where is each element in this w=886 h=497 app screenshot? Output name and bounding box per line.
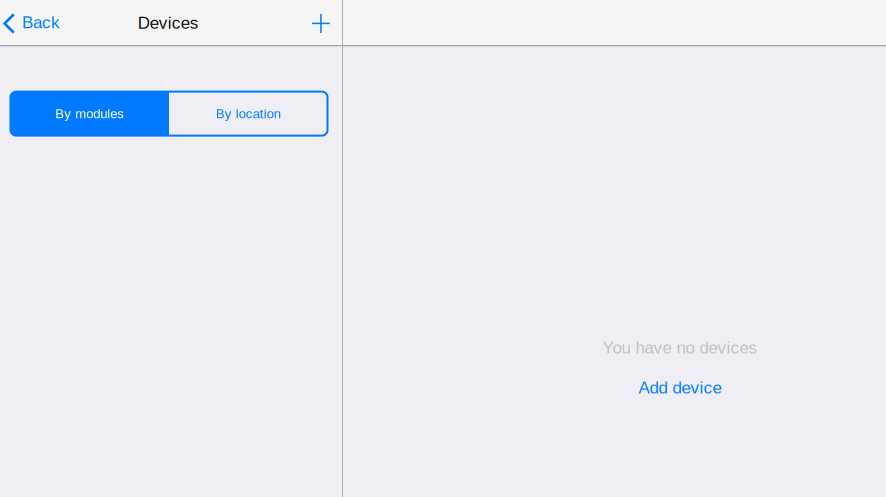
button[interactable]: By modules	[10, 92, 169, 136]
staticText: You have no devices	[603, 338, 758, 357]
staticText: Devices	[138, 13, 199, 32]
button[interactable]: Add device	[634, 373, 727, 402]
staticText: By location	[216, 106, 281, 121]
staticText: Back	[22, 13, 60, 32]
button[interactable]: Back	[0, 0, 70, 44]
button[interactable]: By location	[169, 92, 327, 136]
staticText: Add device	[639, 378, 722, 397]
button[interactable]: Add device	[299, 0, 341, 44]
staticText: By modules	[55, 106, 124, 121]
